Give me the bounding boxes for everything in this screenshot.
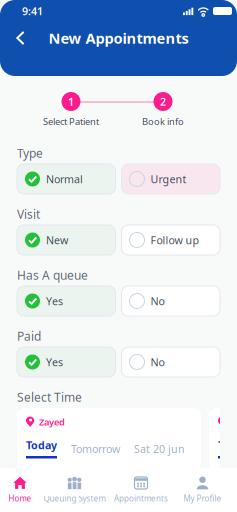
staticText: Tomorrow bbox=[71, 442, 120, 456]
staticText: New Appointments bbox=[48, 28, 188, 48]
staticText: New bbox=[46, 233, 68, 247]
button[interactable]: My Profile bbox=[173, 468, 232, 512]
button[interactable]: Today bbox=[26, 439, 57, 458]
staticText: Select Patient bbox=[43, 115, 99, 128]
staticText: Yes bbox=[46, 355, 63, 369]
button[interactable]: New bbox=[17, 225, 115, 255]
staticText: 1 bbox=[68, 94, 74, 109]
staticText: Sat 20 jun bbox=[134, 442, 185, 456]
staticText: Normal bbox=[46, 172, 83, 186]
staticText: Home bbox=[8, 493, 31, 504]
staticText: Today bbox=[26, 438, 57, 452]
staticText: Appointments bbox=[114, 493, 168, 504]
staticText: Visit bbox=[17, 206, 40, 222]
button[interactable]: Back bbox=[7, 24, 34, 52]
button[interactable]: Sat 20 jun bbox=[134, 443, 185, 455]
button[interactable]: Follow up bbox=[121, 225, 220, 255]
staticText: Zayed bbox=[39, 416, 65, 428]
staticText: 2 bbox=[160, 94, 166, 109]
button[interactable]: Queuing System bbox=[40, 468, 109, 512]
button[interactable]: Today bbox=[218, 439, 237, 458]
button[interactable]: Appointments bbox=[109, 468, 173, 512]
staticText: 9:41 bbox=[22, 4, 43, 18]
staticText: Has A queue bbox=[17, 267, 88, 283]
button[interactable]: Yes bbox=[17, 347, 115, 377]
button[interactable]: No bbox=[121, 286, 220, 316]
staticText: Type bbox=[17, 145, 43, 161]
staticText: My Profile bbox=[183, 493, 221, 504]
staticText: Yes bbox=[46, 294, 63, 308]
staticText: No bbox=[150, 355, 164, 369]
staticText: Select Time bbox=[17, 389, 82, 405]
staticText: Book info bbox=[142, 115, 184, 128]
button[interactable]: Normal bbox=[17, 164, 115, 194]
staticText: Today bbox=[218, 438, 237, 452]
staticText: Queuing System bbox=[43, 493, 105, 504]
staticText: Paid bbox=[17, 328, 41, 344]
staticText: Urgent bbox=[150, 172, 186, 186]
button[interactable]: Urgent bbox=[121, 164, 220, 194]
staticText: No bbox=[150, 294, 164, 308]
staticText: Follow up bbox=[150, 233, 199, 247]
button[interactable]: No bbox=[121, 347, 220, 377]
button[interactable]: Yes bbox=[17, 286, 115, 316]
button[interactable]: Home bbox=[0, 468, 40, 512]
button[interactable]: Tomorrow bbox=[71, 443, 120, 455]
